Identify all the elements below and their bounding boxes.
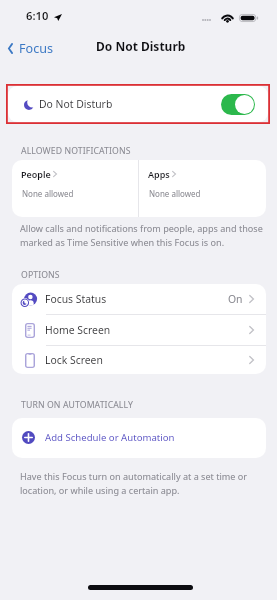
staticText: TURN ON AUTOMATICALLY [21,399,133,411]
staticText: On [228,292,243,306]
button[interactable]: Focus [5,37,57,60]
button[interactable]: Do Not Disturb [8,86,268,122]
button[interactable]: Focus Status [12,284,266,314]
staticText: Do Not Disturb [96,38,186,54]
staticText: ALLOWED NOTIFICATIONS [21,145,131,157]
staticText: Do Not Disturb [39,97,113,111]
button[interactable]: People [12,160,138,217]
staticText: None allowed [149,188,201,199]
staticText: Have this Focus turn on automatically at… [20,470,260,496]
staticText: OPTIONS [21,269,60,281]
staticText: Focus Status [45,292,107,306]
staticText: Lock Screen [45,353,103,367]
button[interactable]: Add Schedule or Automation [12,418,266,458]
staticText: 6:10 [26,8,49,23]
staticText: Add Schedule or Automation [45,431,175,444]
staticText: People [21,168,51,180]
button[interactable]: Home Screen [12,315,266,345]
staticText: Apps [148,168,170,180]
staticText: Home Screen [45,323,111,337]
button[interactable]: Do Not Disturb toggle [221,94,255,115]
staticText: None allowed [22,188,74,199]
staticText: Focus [19,40,54,57]
staticText: Allow calls and notifications from peopl… [20,222,268,248]
button[interactable]: Lock Screen [12,346,266,374]
button[interactable]: Apps [139,160,266,217]
